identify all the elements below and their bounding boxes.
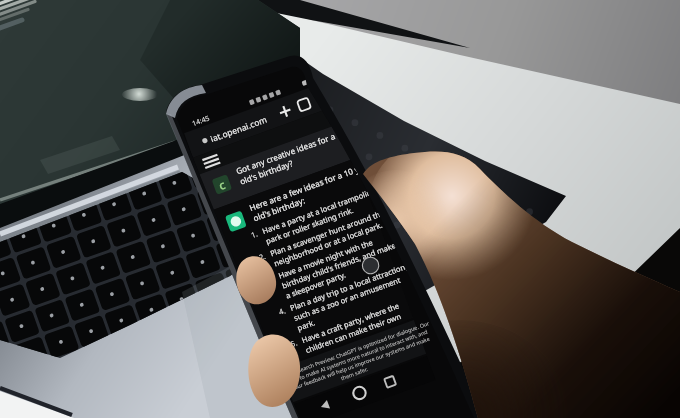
other: Hand holding a phone showing ChatGPT ove… <box>0 0 680 418</box>
